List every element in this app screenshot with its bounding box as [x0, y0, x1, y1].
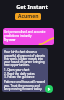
staticText: Acumen [18, 13, 39, 20]
button[interactable]: Get personalised and accurate prediction… [3, 28, 54, 45]
staticText: Patience and focus will reward you. Trus… [4, 80, 47, 91]
staticText: 1. Open your chart 2. Read the daily not… [4, 68, 35, 79]
staticText: Your birth chart shows a powerful alignm… [4, 50, 47, 67]
button[interactable]: Your birth chart shows a powerful alignm… [2, 48, 48, 92]
button[interactable]: Chat on WhatsApp [45, 85, 53, 93]
staticText: Get Instant [0, 3, 64, 11]
staticText: Try now [4, 38, 16, 42]
button[interactable]: Acumen [15, 13, 41, 20]
staticText: Get personalised and accurate prediction… [4, 30, 46, 38]
